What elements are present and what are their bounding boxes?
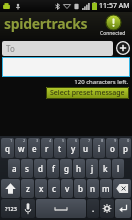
staticText: 1 <box>10 138 13 143</box>
button[interactable]: m <box>100 179 112 198</box>
staticText: 2 <box>23 138 26 143</box>
staticText: d <box>38 163 43 174</box>
button[interactable]: j <box>86 159 98 178</box>
staticText: e <box>32 143 37 154</box>
staticText: n <box>90 183 96 194</box>
button[interactable]: y <box>67 138 79 158</box>
staticText: 3 <box>36 138 39 143</box>
button[interactable]: l <box>112 159 124 178</box>
button[interactable]: Add recipient <box>116 41 130 55</box>
staticText: spidertracks <box>4 14 88 33</box>
button[interactable]: k <box>99 159 111 178</box>
button[interactable]: o <box>106 138 118 158</box>
staticText: l <box>117 163 120 174</box>
staticText: i <box>98 143 101 154</box>
staticText: j <box>91 163 94 174</box>
button[interactable]: s <box>21 159 33 178</box>
staticText: w <box>18 143 25 154</box>
button[interactable]: u <box>80 138 92 158</box>
staticText: r <box>45 143 49 154</box>
staticText: g <box>64 163 69 174</box>
button[interactable] <box>2 57 130 77</box>
staticText: t <box>58 143 62 154</box>
staticText: h <box>76 163 82 174</box>
button[interactable]: n <box>87 179 99 198</box>
staticText: To <box>6 43 15 54</box>
staticText: c <box>52 183 56 194</box>
button[interactable]: w <box>15 138 27 158</box>
staticText: a <box>12 163 17 174</box>
button[interactable]: a <box>8 159 20 178</box>
staticText: 5 <box>62 138 65 143</box>
button[interactable]: f <box>47 159 59 178</box>
staticText: s <box>25 163 29 174</box>
button[interactable]: Settings <box>100 199 114 218</box>
staticText: 4 <box>49 138 52 143</box>
staticText: 11:57 AM <box>99 1 130 11</box>
staticText: 7 <box>88 138 91 143</box>
button[interactable]: g <box>60 159 72 178</box>
button[interactable]: Shift <box>1 179 20 198</box>
staticText: k <box>103 163 108 174</box>
staticText: q <box>5 143 10 154</box>
button[interactable]: q <box>1 138 14 158</box>
button[interactable]: Enter <box>115 199 131 218</box>
staticText: b <box>78 183 83 194</box>
staticText: 6 <box>75 138 78 143</box>
button[interactable]: Voice input <box>21 199 35 218</box>
staticText: f <box>52 163 55 174</box>
staticText: x <box>39 183 44 194</box>
staticText: y <box>71 143 76 154</box>
button[interactable]: Connected status <box>106 15 121 30</box>
staticText: z <box>26 183 30 194</box>
button[interactable]: . <box>87 199 99 218</box>
button[interactable]: v <box>61 179 73 198</box>
staticText: 9 <box>114 138 117 143</box>
button[interactable]: e <box>28 138 40 158</box>
button[interactable]: i <box>93 138 105 158</box>
staticText: Select preset message <box>50 88 125 98</box>
staticText: v <box>65 183 70 194</box>
button[interactable]: To <box>2 41 113 56</box>
staticText: 8 <box>101 138 104 143</box>
button[interactable]: x <box>35 179 47 198</box>
button[interactable]: Space <box>36 199 86 218</box>
button[interactable]: d <box>34 159 46 178</box>
button[interactable]: c <box>48 179 60 198</box>
button[interactable]: h <box>73 159 85 178</box>
staticText: 0 <box>127 138 130 143</box>
staticText: Connected <box>100 30 126 37</box>
staticText: ?123 <box>5 205 17 212</box>
staticText: o <box>110 143 115 154</box>
staticText: p <box>123 143 128 154</box>
button[interactable]: b <box>74 179 86 198</box>
button[interactable]: p <box>119 138 131 158</box>
button[interactable]: z <box>21 179 34 198</box>
button[interactable]: Select preset message <box>46 87 129 99</box>
staticText: 120 characters left. <box>74 78 128 86</box>
staticText: m <box>102 183 110 194</box>
button[interactable]: r <box>41 138 53 158</box>
staticText: . <box>92 203 95 214</box>
staticText: u <box>83 143 89 154</box>
button[interactable]: Backspace <box>113 179 131 198</box>
button[interactable]: ?123 <box>1 199 20 218</box>
button[interactable]: t <box>54 138 66 158</box>
